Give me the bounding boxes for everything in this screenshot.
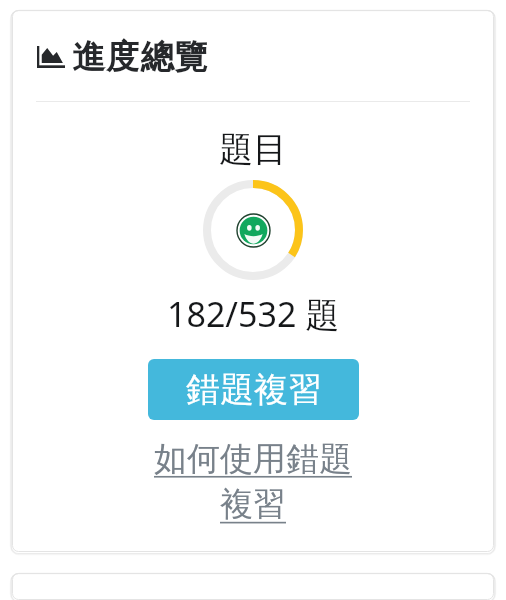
- button[interactable]: 如何使用錯題複習: [150, 438, 356, 525]
- staticText: 題目: [219, 128, 287, 171]
- staticText: 如何使用錯題複習: [150, 438, 356, 525]
- staticText: 182/532 題: [167, 291, 340, 337]
- other: Progress chart: [37, 46, 65, 68]
- button[interactable]: 錯題複習: [148, 359, 359, 420]
- staticText: 進度總覽: [72, 36, 209, 78]
- staticText: 錯題複習: [186, 368, 322, 411]
